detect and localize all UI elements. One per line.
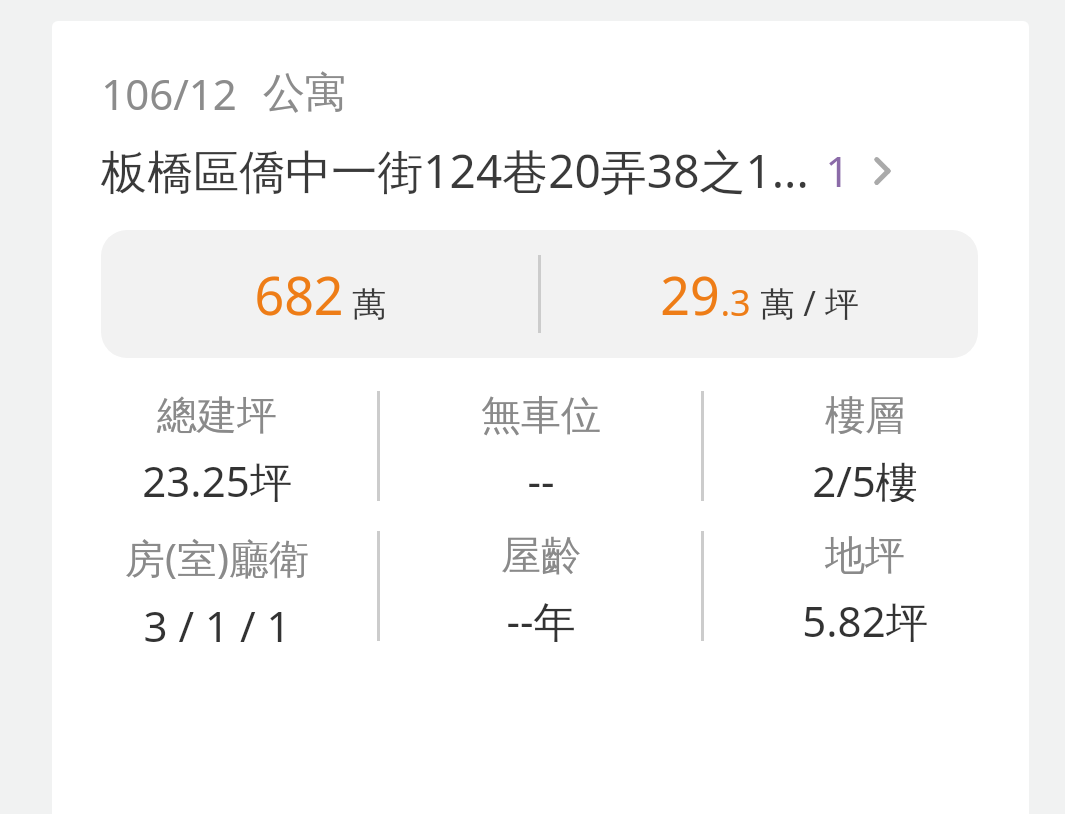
staticText: 23.25坪 [142, 452, 292, 502]
button[interactable]: 房(室)廳衛 [56, 530, 377, 642]
staticText: 無車位 [481, 390, 601, 440]
staticText: 屋齡 [501, 530, 581, 580]
staticText: 地坪 [825, 530, 905, 580]
button[interactable]: 樓層 [704, 390, 1025, 502]
staticText: -- [527, 452, 555, 502]
staticText: 萬 [352, 283, 386, 326]
staticText: .3 [720, 278, 751, 327]
staticText: 樓層 [825, 390, 905, 440]
button[interactable]: 無車位 [380, 390, 701, 502]
staticText: 3 / 1 / 1 [143, 597, 291, 642]
button[interactable]: 106/12 [52, 21, 1029, 814]
staticText: 板橋區僑中一街124巷20弄38之1... [101, 139, 809, 202]
button[interactable]: 屋齡 [380, 530, 701, 642]
staticText: 公寓 [263, 67, 347, 120]
staticText: 1 [825, 142, 850, 199]
staticText: 5.82坪 [802, 592, 928, 642]
button[interactable]: 總建坪 [56, 390, 377, 502]
staticText: 682 [254, 259, 344, 330]
staticText: 29 [660, 259, 720, 330]
staticText: 萬 / 坪 [760, 280, 859, 326]
button[interactable]: 地坪 [704, 530, 1025, 642]
staticText: 總建坪 [157, 390, 277, 440]
staticText: --年 [506, 592, 576, 642]
button[interactable]: 查看詳情 [860, 149, 904, 193]
staticText: 房(室)廳衛 [125, 530, 309, 585]
staticText: 106/12 [101, 65, 237, 122]
button[interactable]: 682 [101, 230, 978, 358]
staticText: 2/5樓 [812, 452, 918, 502]
